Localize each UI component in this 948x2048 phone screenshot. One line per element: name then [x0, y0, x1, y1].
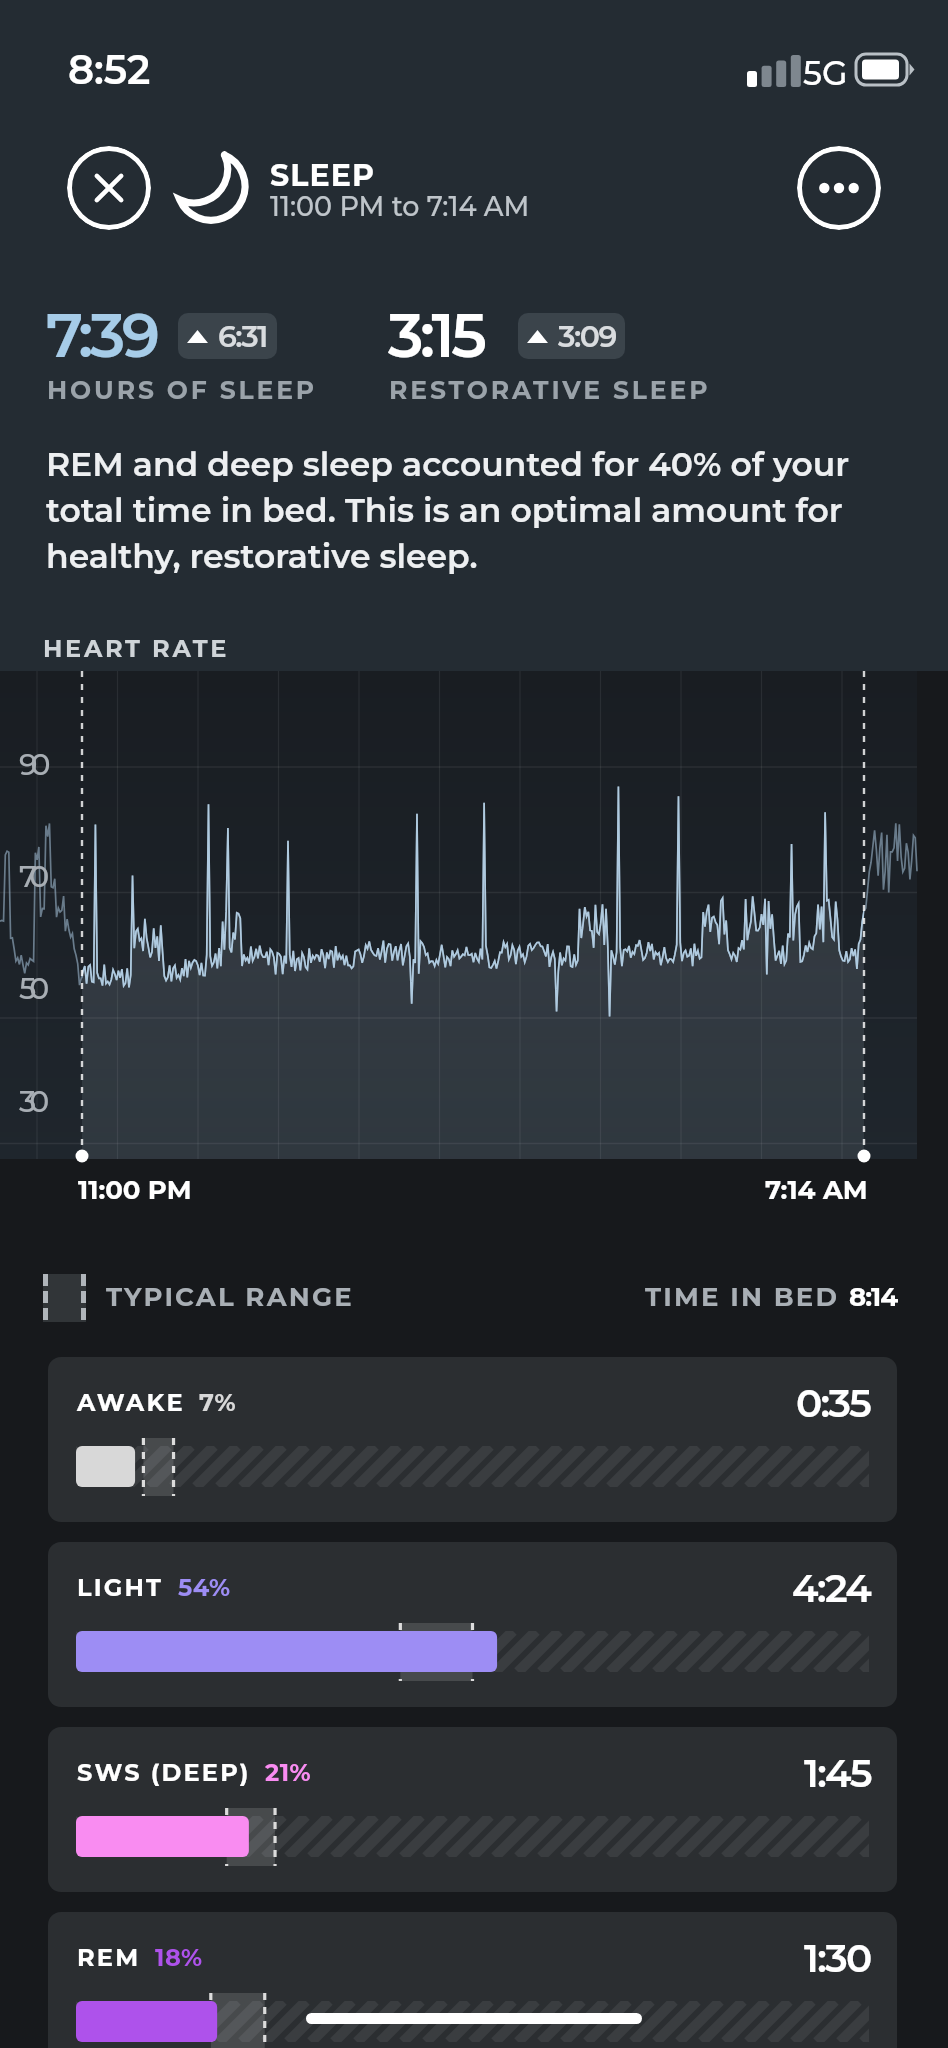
staticText: 50 [19, 970, 43, 1007]
staticText: 7:14 AM [765, 1174, 868, 1206]
staticText: 1:30 [804, 1934, 871, 1982]
staticText: 7% [199, 1388, 237, 1417]
staticText: 6:31 [218, 318, 268, 355]
staticText: LIGHT [77, 1573, 164, 1602]
staticText: AWAKE [77, 1388, 185, 1417]
staticText: 18% [155, 1943, 203, 1972]
staticText: REM [77, 1943, 141, 1972]
staticText: RESTORATIVE SLEEP [389, 375, 711, 405]
button[interactable]: REM [48, 1912, 897, 2048]
staticText: HEART RATE [43, 634, 230, 663]
button[interactable]: More options [797, 146, 881, 230]
staticText: HOURS OF SLEEP [47, 375, 318, 405]
button[interactable]: AWAKE [48, 1357, 897, 1522]
button[interactable]: SWS (DEEP) [48, 1727, 897, 1892]
staticText: TIME IN BED [645, 1281, 849, 1313]
staticText: REM and deep sleep accounted for 40% of … [46, 444, 858, 576]
staticText: 90 [19, 746, 44, 783]
staticText: 5G [803, 53, 848, 93]
staticText: 70 [19, 858, 43, 895]
staticText: TYPICAL RANGE [106, 1281, 354, 1313]
button[interactable]: Close [67, 146, 151, 230]
staticText: 54% [178, 1573, 231, 1602]
staticText: 3:09 [558, 318, 616, 355]
staticText: 1:45 [804, 1749, 871, 1797]
staticText: 7:39 [46, 298, 157, 372]
staticText: 4:24 [792, 1564, 871, 1612]
staticText: SWS (DEEP) [77, 1758, 251, 1787]
staticText: 0:35 [796, 1379, 871, 1427]
staticText: 8:52 [68, 45, 151, 94]
staticText: 8:14 [849, 1281, 898, 1313]
staticText: 21% [265, 1758, 312, 1787]
staticText: 11:00 PM [78, 1174, 192, 1206]
staticText: 11:00 PM to 7:14 AM [270, 190, 530, 223]
button[interactable]: LIGHT [48, 1542, 897, 1707]
staticText: 3:15 [388, 298, 484, 372]
staticText: SLEEP [270, 157, 375, 194]
staticText: 30 [19, 1083, 43, 1120]
